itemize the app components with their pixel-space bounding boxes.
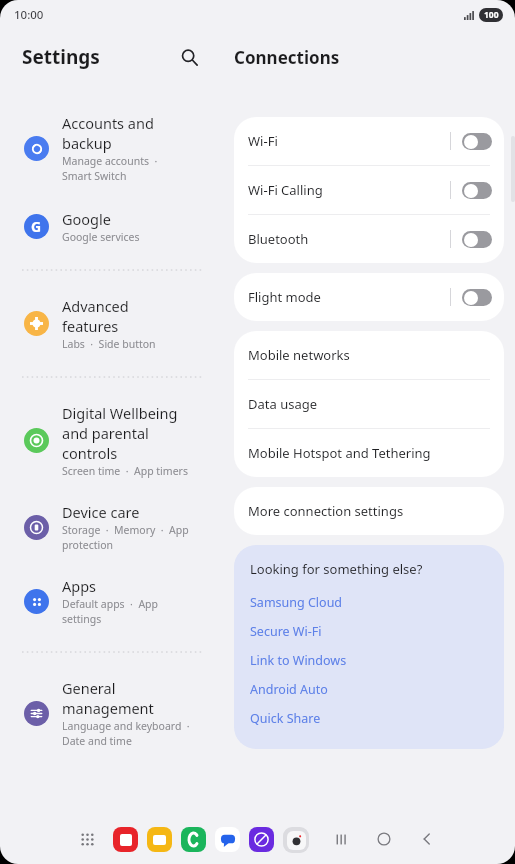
staticText: Google xyxy=(62,209,111,229)
button[interactable]: Secure Wi-Fi xyxy=(250,617,490,646)
button[interactable]: Camera xyxy=(282,826,309,853)
button[interactable]: More connection settings xyxy=(234,487,504,535)
staticText: Bluetooth xyxy=(248,230,450,248)
button[interactable]: Wi-Fi xyxy=(234,117,504,165)
staticText: More connection settings xyxy=(248,502,404,520)
button[interactable]: Accounts and backup xyxy=(0,106,222,190)
button[interactable]: Bluetooth xyxy=(234,215,504,263)
staticText: Settings xyxy=(22,44,100,70)
staticText: Manage accounts · Smart Switch xyxy=(62,154,158,183)
staticText: Mobile Hotspot and Tethering xyxy=(248,444,431,462)
staticText: Storage · Memory · App protection xyxy=(62,523,189,552)
staticText: Looking for something else? xyxy=(250,560,423,578)
staticText: Language and keyboard · Date and time xyxy=(62,719,190,748)
staticText: General management xyxy=(62,678,154,718)
staticText: Link to Windows xyxy=(250,652,347,669)
staticText: Quick Share xyxy=(250,710,321,727)
staticText: Samsung Cloud xyxy=(250,594,343,611)
button[interactable]: Link to Windows xyxy=(250,646,490,675)
staticText: Default apps · App settings xyxy=(62,597,159,626)
staticText: Digital Wellbeing and parental controls xyxy=(62,403,178,463)
button[interactable]: Recents xyxy=(326,824,356,854)
staticText: Mobile networks xyxy=(248,346,350,364)
staticText: Wi-Fi xyxy=(248,132,450,150)
button[interactable]: Bluetooth toggle xyxy=(462,231,492,248)
staticText: Secure Wi-Fi xyxy=(250,623,322,640)
staticText: 100 xyxy=(484,9,499,21)
button[interactable]: Phone xyxy=(180,826,207,853)
button[interactable]: Advanced features xyxy=(0,289,222,358)
button[interactable]: Apps xyxy=(0,569,222,633)
staticText: Advanced features xyxy=(62,296,129,336)
button[interactable]: Search xyxy=(174,42,204,72)
staticText: Apps xyxy=(62,576,97,596)
button[interactable]: Wi-Fi Calling toggle xyxy=(462,182,492,199)
staticText: 10:00 xyxy=(14,7,44,23)
staticText: Labs · Side button xyxy=(62,337,156,351)
button[interactable]: Home xyxy=(369,824,399,854)
button[interactable]: G xyxy=(0,202,222,251)
button[interactable]: Digital Wellbeing and parental controls xyxy=(0,396,222,485)
staticText: Google services xyxy=(62,230,140,244)
staticText: Flight mode xyxy=(248,288,450,306)
button[interactable]: Apps xyxy=(74,826,101,853)
staticText: Data usage xyxy=(248,395,318,413)
staticText: Accounts and backup xyxy=(62,113,154,153)
button[interactable]: Back xyxy=(412,824,442,854)
button[interactable]: Samsung Notes xyxy=(112,826,139,853)
button[interactable]: Wi-Fi Calling xyxy=(234,166,504,214)
button[interactable]: Data usage xyxy=(234,380,504,428)
staticText: Device care xyxy=(62,502,140,522)
staticText: Screen time · App timers xyxy=(62,464,188,478)
staticText: G xyxy=(31,217,42,236)
staticText: Connections xyxy=(234,46,340,69)
button[interactable]: Mobile Hotspot and Tethering xyxy=(234,429,504,477)
button[interactable]: Internet xyxy=(248,826,275,853)
button[interactable]: Flight mode toggle xyxy=(462,289,492,306)
button[interactable]: Android Auto xyxy=(250,675,490,704)
button[interactable]: Mobile networks xyxy=(234,331,504,379)
button[interactable]: Flight mode xyxy=(234,273,504,321)
button[interactable]: Device care xyxy=(0,495,222,559)
staticText: Android Auto xyxy=(250,681,328,698)
button[interactable]: Wi-Fi toggle xyxy=(462,133,492,150)
staticText: Wi-Fi Calling xyxy=(248,181,450,199)
button[interactable]: Samsung Cloud xyxy=(250,588,490,617)
button[interactable]: Quick Share xyxy=(250,704,490,733)
button[interactable]: My Files xyxy=(146,826,173,853)
button[interactable]: General management xyxy=(0,671,222,755)
button[interactable]: Messages xyxy=(214,826,241,853)
